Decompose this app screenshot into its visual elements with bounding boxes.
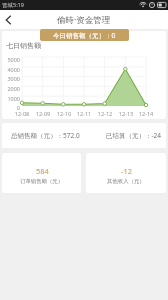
staticText: 0 [3, 104, 20, 111]
button[interactable]: 584 [2, 153, 81, 193]
staticText: 12-12 [94, 110, 116, 117]
button[interactable]: -12 [86, 153, 166, 193]
staticText: 3000 [3, 75, 20, 82]
staticText: -12 [121, 166, 132, 176]
staticText: 12-14 [135, 110, 157, 117]
staticText: 今日销售额（元）：0 [53, 31, 116, 40]
staticText: 已结算（元）：-24 [106, 131, 162, 140]
staticText: 七日销售额 [6, 41, 41, 50]
staticText: 4000 [3, 66, 20, 73]
staticText: 12-08 [11, 110, 33, 117]
button[interactable]: Back [0, 11, 18, 29]
staticText: 12-13 [115, 110, 137, 117]
staticText: 5000 [3, 56, 20, 63]
staticText: 12-09 [32, 110, 54, 117]
button[interactable]: 今日销售额（元）：0 [40, 29, 129, 41]
staticText: 晋城5:19 [2, 1, 24, 9]
staticText: 12-11 [73, 110, 95, 117]
staticText: 2000 [3, 85, 20, 92]
staticText: 584 [36, 166, 49, 176]
staticText: 12-10 [53, 110, 75, 117]
staticText: 其他收入（元） [107, 178, 145, 185]
staticText: 偷時·资金管理 [57, 14, 111, 26]
staticText: 订单销售额（元） [20, 178, 64, 185]
staticText: 1000 [3, 95, 20, 102]
staticText: 总销售额（元）：572.0 [11, 131, 80, 140]
